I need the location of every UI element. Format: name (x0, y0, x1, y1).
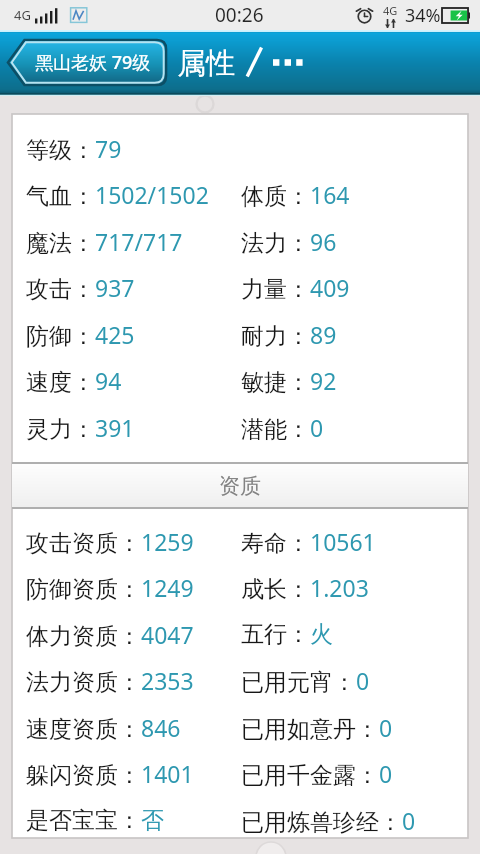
button[interactable]: 法力资质：2353 (12, 657, 468, 703)
staticText: 防御资质：1249 (26, 572, 194, 603)
staticText: 气血：1502/1502 (26, 179, 209, 210)
staticText: 属性 (177, 45, 235, 82)
staticText: 速度：94 (26, 365, 122, 396)
staticText: 00:26 (215, 2, 264, 28)
staticText: 防御：425 (26, 319, 135, 350)
staticText: 法力资质：2353 (26, 665, 194, 696)
staticText: 已用如意丹：0 (241, 712, 393, 743)
button[interactable]: 是否宝宝：否 (12, 797, 468, 843)
button[interactable]: 攻击资质：1259 (12, 518, 468, 564)
staticText: 等级：79 (26, 133, 122, 164)
staticText: 躲闪资质：1401 (26, 758, 194, 789)
staticText: 已用千金露：0 (241, 758, 393, 789)
button[interactable]: Back (8, 40, 166, 85)
staticText: 黑山老妖 79级 (35, 50, 151, 75)
button[interactable]: 灵力：391 (12, 404, 468, 450)
staticText: 寿命：10561 (241, 526, 376, 557)
button[interactable]: 躲闪资质：1401 (12, 750, 468, 796)
button[interactable]: 速度资质：846 (12, 704, 468, 750)
staticText: 体质：164 (241, 179, 350, 210)
button[interactable]: 体力资质：4047 (12, 611, 468, 657)
staticText: 4G (383, 3, 398, 18)
staticText: 已用元宵：0 (241, 665, 370, 696)
staticText: 敏捷：92 (241, 365, 337, 396)
staticText: 体力资质：4047 (26, 619, 194, 650)
staticText: 攻击：937 (26, 272, 135, 303)
staticText: 已用炼兽珍经：0 (241, 805, 416, 836)
button[interactable]: 等级：79 (12, 125, 468, 171)
staticText: 法力：96 (241, 226, 337, 257)
button[interactable]: 防御：425 (12, 311, 468, 357)
staticText: 资质 (219, 473, 261, 499)
staticText: 魔法：717/717 (26, 226, 183, 257)
button[interactable]: 速度：94 (12, 357, 468, 403)
staticText: 潜能：0 (241, 412, 324, 443)
button[interactable]: 防御资质：1249 (12, 564, 468, 610)
staticText: 五行：火 (241, 620, 333, 649)
staticText: 力量：409 (241, 272, 350, 303)
button[interactable]: 攻击：937 (12, 264, 468, 310)
staticText: 4G (14, 6, 31, 24)
button[interactable]: 气血：1502/1502 (12, 171, 468, 217)
staticText: 是否宝宝：否 (26, 806, 164, 835)
staticText: 攻击资质：1259 (26, 526, 194, 557)
staticText: 34% (405, 3, 441, 28)
staticText: 速度资质：846 (26, 712, 181, 743)
button[interactable]: 魔法：717/717 (12, 218, 468, 264)
staticText: 灵力：391 (26, 412, 135, 443)
staticText: 成长：1.203 (241, 572, 369, 603)
staticText: 耐力：89 (241, 319, 337, 350)
